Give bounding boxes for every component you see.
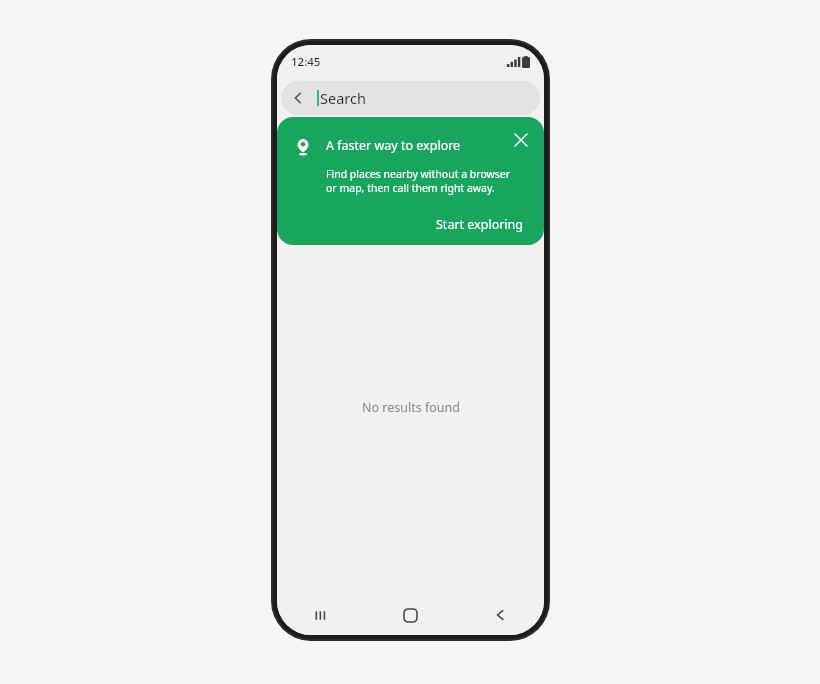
button[interactable]: Home	[366, 595, 455, 635]
staticText: No results found	[362, 399, 460, 416]
button[interactable]: Back	[281, 81, 315, 115]
button[interactable]: Start exploring	[432, 214, 528, 235]
staticText: Search	[320, 88, 540, 108]
staticText: Start exploring	[436, 216, 524, 233]
button[interactable]: Close	[506, 125, 536, 155]
button[interactable]: Recent apps	[277, 595, 366, 635]
staticText: 12:45	[291, 54, 321, 70]
staticText: Find places nearby without a browser or …	[326, 167, 511, 195]
staticText: A faster way to explore	[326, 137, 461, 154]
button[interactable]: Back	[455, 595, 544, 635]
button[interactable]: Close	[277, 117, 544, 245]
